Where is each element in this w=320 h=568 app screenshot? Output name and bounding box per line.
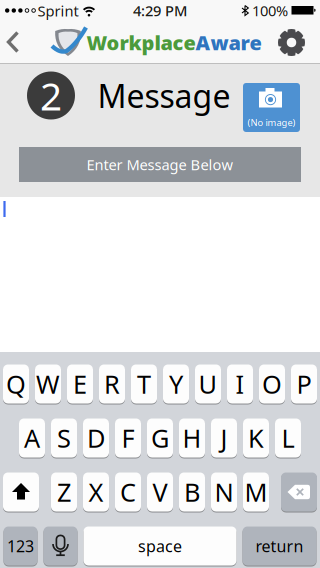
button[interactable]: Settings (274, 25, 308, 59)
staticText: A (24, 421, 40, 455)
staticText: 123 (7, 535, 34, 557)
staticText: M (244, 475, 267, 509)
button[interactable]: G (147, 418, 173, 458)
button[interactable]: J (211, 418, 237, 458)
button[interactable]: M (243, 472, 269, 512)
button[interactable]: Z (51, 472, 77, 512)
button[interactable]: D (83, 418, 109, 458)
staticText: U (198, 367, 217, 401)
staticText: J (220, 421, 227, 455)
staticText: Message (97, 74, 230, 117)
button[interactable]: L (275, 418, 301, 458)
button[interactable]: K (243, 418, 269, 458)
button[interactable]: W (35, 364, 61, 404)
button[interactable]: N (211, 472, 237, 512)
staticText: Aware (195, 29, 261, 56)
button[interactable]: A (19, 418, 45, 458)
staticText: return (255, 535, 303, 557)
staticText: X (88, 475, 103, 509)
staticText: S (57, 421, 71, 455)
button[interactable]: V (147, 472, 173, 512)
staticText: E (73, 367, 87, 401)
button[interactable]: S (51, 418, 77, 458)
button[interactable]: Dictate (43, 526, 77, 566)
staticText: Q (6, 367, 26, 401)
staticText: (No image) (247, 116, 295, 129)
button[interactable]: T (131, 364, 157, 404)
button[interactable]: R (99, 364, 125, 404)
staticText: Z (57, 475, 71, 509)
button[interactable]: Y (163, 364, 189, 404)
staticText: Y (169, 367, 183, 401)
button[interactable]: Shift (3, 472, 39, 512)
button[interactable]: O (259, 364, 285, 404)
staticText: space (138, 535, 182, 557)
staticText: C (120, 475, 136, 509)
button[interactable]: Delete (281, 472, 317, 512)
button[interactable]: E (67, 364, 93, 404)
button[interactable]: P (291, 364, 317, 404)
staticText: G (151, 421, 169, 455)
staticText: N (214, 475, 233, 509)
button[interactable]: X (83, 472, 109, 512)
staticText: I (235, 367, 244, 401)
button[interactable]: Add photo (243, 83, 300, 132)
button[interactable]: space (83, 526, 236, 566)
button[interactable]: B (179, 472, 205, 512)
staticText: T (137, 367, 151, 401)
staticText: H (182, 421, 201, 455)
staticText: P (296, 367, 311, 401)
staticText: Enter Message Below (86, 155, 233, 174)
button[interactable]: Back (1, 20, 25, 64)
staticText: D (87, 421, 105, 455)
button[interactable]: I (227, 364, 253, 404)
button[interactable]: Q (3, 364, 29, 404)
staticText: 100% (252, 1, 288, 20)
button[interactable]: return (242, 526, 316, 566)
staticText: V (152, 475, 167, 509)
staticText: Workplace (86, 29, 195, 56)
staticText: Sprint (37, 1, 78, 20)
button[interactable]: H (179, 418, 205, 458)
staticText: W (36, 367, 60, 401)
staticText: 2 (40, 70, 62, 121)
staticText: O (262, 367, 282, 401)
staticText: 4:29 PM (133, 1, 187, 20)
staticText: R (104, 367, 120, 401)
button[interactable]: F (115, 418, 141, 458)
staticText: L (281, 421, 294, 455)
button[interactable]: C (115, 472, 141, 512)
button[interactable]: 123 (3, 526, 37, 566)
staticText: F (121, 421, 134, 455)
staticText: K (248, 421, 264, 455)
staticText: B (184, 475, 200, 509)
button[interactable]: U (195, 364, 221, 404)
button[interactable]: Enter Message Below (19, 147, 301, 182)
